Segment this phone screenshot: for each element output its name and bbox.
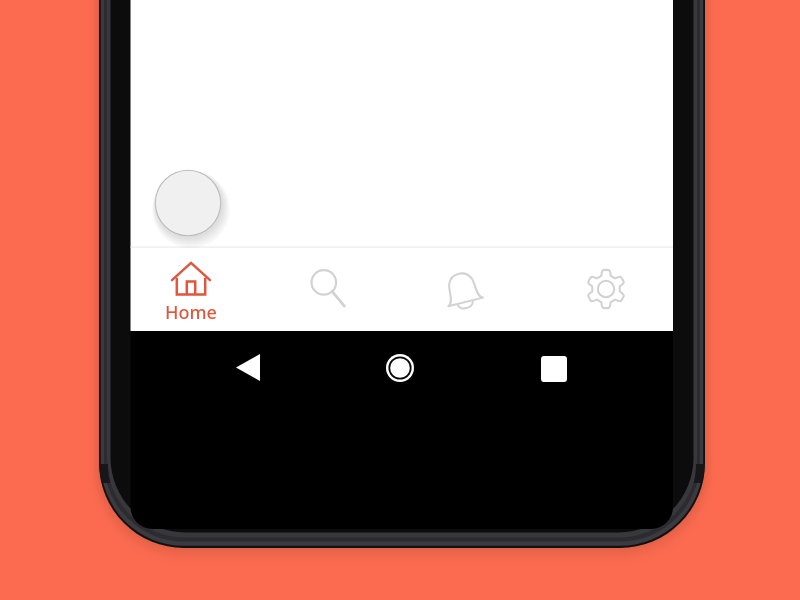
button[interactable]: Home — [366, 334, 434, 402]
button[interactable]: Search — [280, 252, 376, 328]
button[interactable]: Home — [143, 252, 239, 328]
button[interactable]: Settings — [558, 252, 654, 328]
staticText: Home — [143, 300, 239, 325]
button[interactable]: Notifications — [414, 252, 510, 328]
button[interactable]: Recents — [520, 335, 588, 403]
button[interactable]: Back — [214, 333, 282, 401]
button[interactable]: Add — [155, 170, 221, 236]
